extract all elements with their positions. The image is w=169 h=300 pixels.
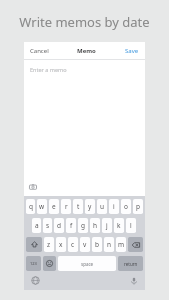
staticText: v: [83, 240, 87, 249]
staticText: 123: [30, 261, 37, 266]
staticText: l: [130, 221, 132, 230]
button[interactable]: h: [90, 218, 100, 233]
staticText: Enter a memo: [30, 66, 67, 73]
button[interactable]: Enter a memo: [24, 60, 145, 196]
staticText: return: [124, 261, 138, 267]
staticText: z: [47, 240, 51, 249]
button[interactable]: r: [61, 199, 71, 214]
button[interactable]: Cancel: [29, 45, 50, 57]
staticText: Write memos by date: [19, 13, 150, 31]
staticText: c: [71, 240, 75, 249]
staticText: y: [88, 202, 92, 211]
staticText: h: [93, 221, 98, 230]
button[interactable]: e: [49, 199, 59, 214]
button[interactable]: g: [78, 218, 88, 233]
button[interactable]: n: [104, 237, 114, 252]
button[interactable]: Voice input: [128, 275, 139, 286]
staticText: b: [95, 240, 99, 249]
button[interactable]: f: [66, 218, 76, 233]
button[interactable]: Save: [124, 45, 140, 57]
button[interactable]: d: [54, 218, 64, 233]
button[interactable]: Emoji: [43, 256, 56, 271]
button[interactable]: Shift: [26, 237, 42, 252]
staticText: j: [106, 221, 108, 230]
staticText: space: [81, 261, 94, 267]
staticText: f: [70, 221, 73, 230]
button[interactable]: Attach photo: [28, 182, 38, 192]
staticText: d: [57, 221, 61, 230]
staticText: i: [113, 202, 115, 211]
button[interactable]: p: [133, 199, 143, 214]
staticText: w: [39, 202, 45, 211]
button[interactable]: c: [68, 237, 78, 252]
staticText: u: [100, 202, 105, 211]
button[interactable]: o: [121, 199, 131, 214]
button[interactable]: i: [109, 199, 119, 214]
button[interactable]: z: [44, 237, 54, 252]
button[interactable]: u: [97, 199, 107, 214]
staticText: r: [65, 202, 68, 211]
staticText: k: [117, 221, 121, 230]
button[interactable]: 123: [26, 256, 41, 271]
staticText: g: [81, 221, 85, 230]
button[interactable]: q: [26, 199, 35, 214]
button[interactable]: y: [85, 199, 95, 214]
staticText: s: [46, 221, 50, 230]
staticText: x: [59, 240, 63, 249]
button[interactable]: return: [118, 256, 143, 271]
button[interactable]: j: [102, 218, 112, 233]
staticText: Cancel: [30, 47, 49, 55]
button[interactable]: v: [80, 237, 90, 252]
staticText: n: [107, 240, 112, 249]
button[interactable]: m: [116, 237, 126, 252]
staticText: o: [124, 202, 128, 211]
button[interactable]: k: [114, 218, 124, 233]
button[interactable]: Change language: [30, 275, 41, 286]
button[interactable]: Backspace: [128, 237, 143, 252]
button[interactable]: t: [73, 199, 83, 214]
staticText: m: [118, 240, 125, 249]
button[interactable]: x: [56, 237, 66, 252]
staticText: Save: [125, 47, 139, 55]
button[interactable]: l: [126, 218, 136, 233]
staticText: q: [29, 202, 33, 211]
button[interactable]: a: [32, 218, 41, 233]
button[interactable]: space: [58, 256, 116, 271]
staticText: a: [35, 221, 39, 230]
staticText: t: [77, 202, 80, 211]
button[interactable]: b: [92, 237, 102, 252]
staticText: e: [52, 202, 56, 211]
button[interactable]: s: [43, 218, 52, 233]
staticText: Memo: [77, 47, 96, 55]
staticText: p: [136, 202, 140, 211]
button[interactable]: w: [37, 199, 47, 214]
